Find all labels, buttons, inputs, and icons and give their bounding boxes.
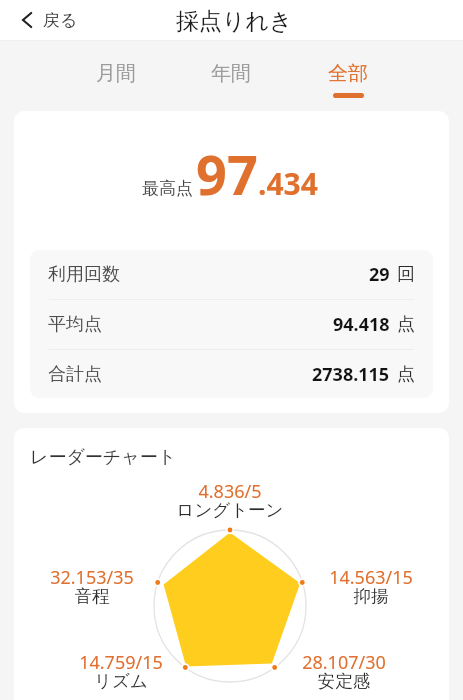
staticText: 点 (397, 313, 415, 336)
staticText: 抑揚 (301, 585, 441, 607)
staticText: 4.836/5 (160, 479, 300, 504)
staticText: 採点りれき (176, 7, 293, 36)
staticText: 音程 (22, 585, 162, 607)
button[interactable]: 平均点 (30, 300, 433, 349)
staticText: 利用回数 (48, 263, 120, 286)
staticText: 97 (196, 137, 258, 211)
staticText: 29 (369, 262, 390, 287)
staticText: 14.759/15 (51, 650, 191, 675)
staticText: 平均点 (48, 313, 102, 336)
staticText: 14.563/15 (301, 565, 441, 590)
staticText: .434 (258, 163, 318, 204)
button[interactable]: 年間 (192, 47, 270, 103)
staticText: 安定感 (274, 670, 414, 692)
button[interactable]: Back (14, 4, 86, 37)
staticText: 28.107/30 (274, 650, 414, 675)
staticText: 32.153/35 (22, 565, 162, 590)
button[interactable]: 月間 (77, 47, 155, 103)
staticText: リズム (51, 670, 191, 692)
staticText: 戻る (43, 10, 78, 31)
staticText: 最高点 (142, 178, 193, 199)
staticText: 2738.115 (312, 362, 390, 387)
button[interactable]: 合計点 (30, 350, 433, 398)
button[interactable]: 利用回数 (30, 250, 433, 299)
staticText: 月間 (96, 61, 136, 86)
staticText: 94.418 (333, 312, 390, 337)
staticText: 全部 (328, 61, 368, 86)
staticText: 合計点 (48, 363, 102, 386)
staticText: ロングトーン (160, 499, 300, 521)
button[interactable]: 全部 (309, 47, 387, 103)
staticText: 年間 (211, 61, 251, 86)
staticText: 点 (397, 363, 415, 386)
staticText: レーダーチャート (30, 446, 177, 469)
staticText: 回 (397, 263, 415, 286)
